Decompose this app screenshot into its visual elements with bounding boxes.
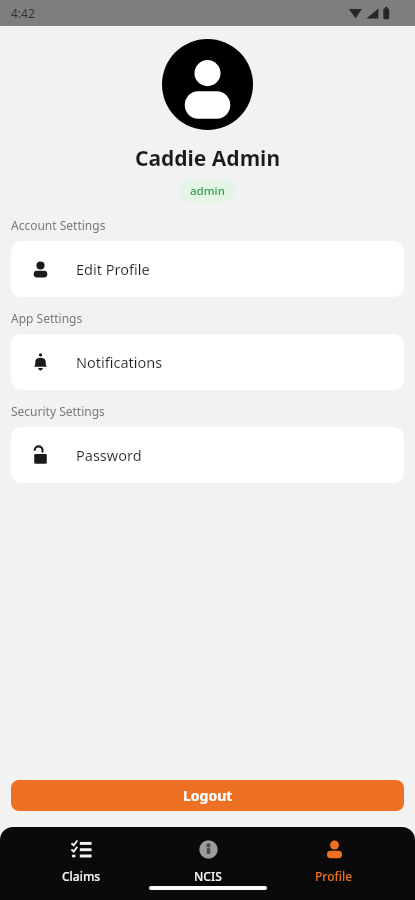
button[interactable]: Password [11, 427, 404, 483]
staticText: Claims [62, 868, 101, 884]
button[interactable]: NCIS [163, 839, 253, 884]
staticText: Notifications [76, 352, 163, 372]
staticText: Profile [315, 868, 353, 884]
staticText: Logout [183, 786, 233, 805]
staticText: 4:42 [11, 5, 35, 21]
staticText: App Settings [11, 310, 83, 326]
staticText: Caddie Admin [0, 144, 415, 173]
staticText: Edit Profile [76, 259, 150, 279]
button[interactable]: Notifications [11, 334, 404, 390]
staticText: Account Settings [11, 217, 106, 233]
staticText: NCIS [194, 868, 222, 884]
button[interactable]: Claims [36, 839, 126, 884]
staticText: Security Settings [11, 403, 105, 419]
button[interactable]: Edit Profile [11, 241, 404, 297]
button[interactable]: Logout [11, 780, 404, 811]
staticText: admin [190, 183, 225, 199]
button[interactable]: Profile [289, 839, 379, 884]
staticText: Password [76, 445, 142, 465]
